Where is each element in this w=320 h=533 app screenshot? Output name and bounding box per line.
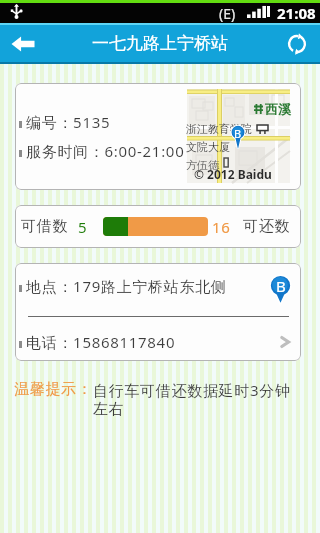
staticText: 温馨提示：: [14, 380, 93, 399]
staticText: 方伍德: [186, 158, 219, 172]
staticText: 自行车可借还数据延时3分钟左右: [93, 380, 291, 419]
staticText: 一七九路上宁桥站: [92, 33, 228, 54]
staticText: 地点：179路上宁桥站东北侧: [26, 276, 227, 296]
staticText: B: [276, 276, 286, 296]
staticText: 5: [78, 217, 88, 237]
button[interactable]: 电话：15868117840: [15, 317, 301, 361]
staticText: 可还数: [243, 217, 291, 236]
staticText: 16: [212, 217, 231, 237]
staticText: B: [234, 126, 242, 141]
staticText: 21:08: [277, 3, 316, 23]
staticText: © 2012 Baidu: [194, 166, 272, 182]
staticText: 浙江教育学院: [186, 122, 252, 136]
button[interactable]: Back: [0, 23, 46, 64]
staticText: 编号：5135: [26, 112, 111, 132]
staticText: 西溪: [265, 101, 291, 117]
staticText: 电话：15868117840: [26, 332, 176, 352]
staticText: (E): [219, 4, 236, 23]
button[interactable]: 地点：179路上宁桥站东北侧: [15, 263, 301, 316]
button[interactable]: Refresh: [274, 23, 320, 64]
staticText: 服务时间：6:00-21:00: [26, 141, 185, 161]
staticText: 文院大厦: [186, 140, 230, 154]
staticText: 可借数: [21, 217, 69, 236]
